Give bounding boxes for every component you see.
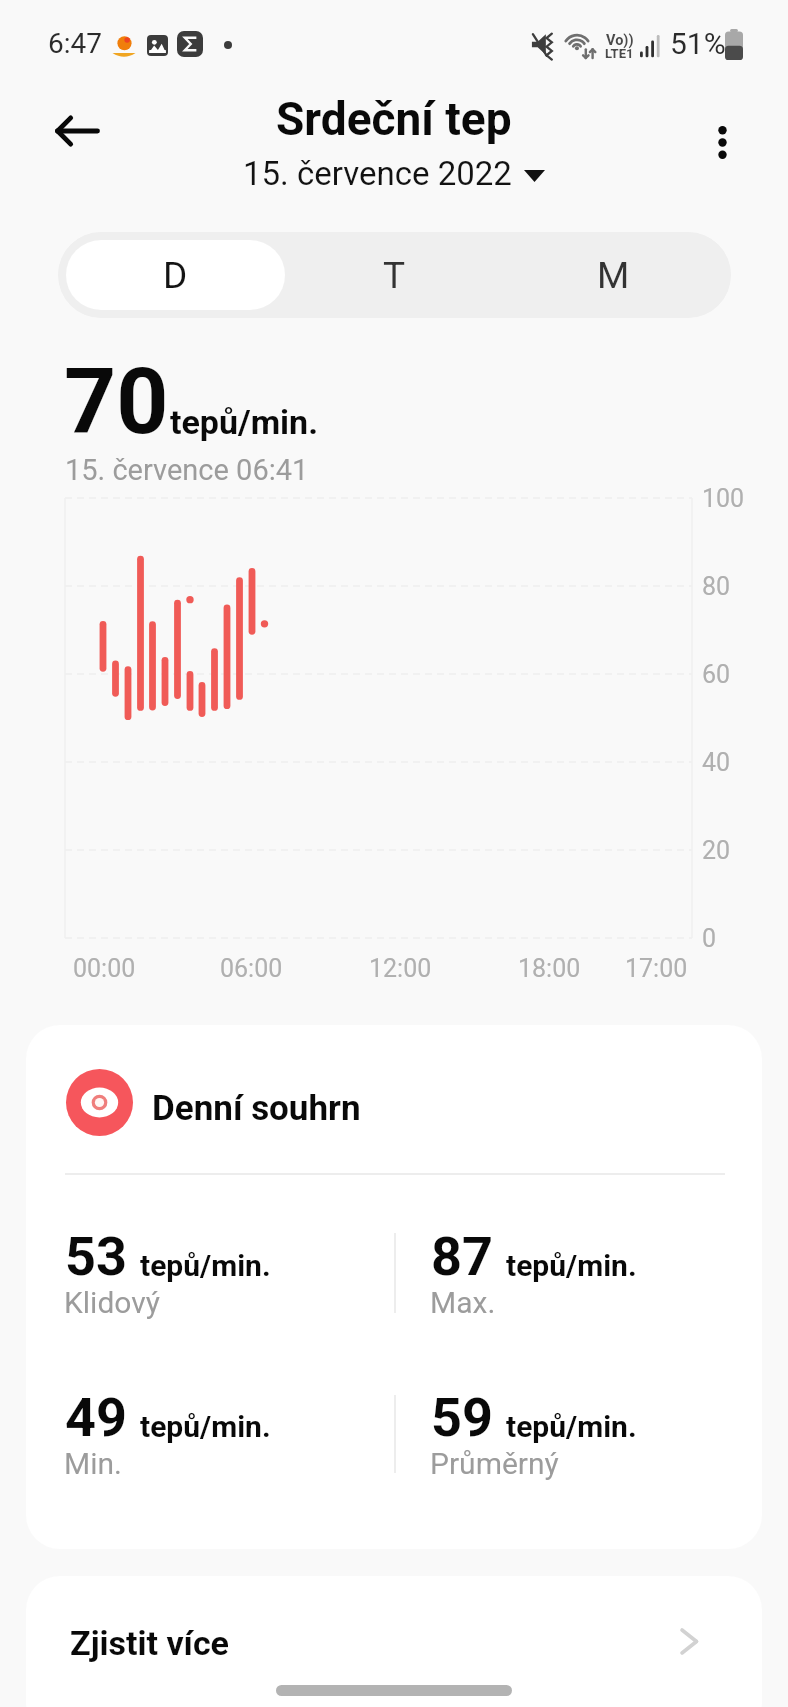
- staticText: Srdeční tep: [276, 92, 512, 146]
- staticText: Zjistit více: [70, 1623, 229, 1663]
- staticText: 51%: [670, 26, 726, 61]
- staticText: 06:00: [220, 954, 283, 983]
- button[interactable]: T: [285, 240, 504, 310]
- staticText: 100: [702, 484, 745, 513]
- staticText: Klidový: [64, 1285, 160, 1320]
- staticText: tepů/min.: [506, 1248, 637, 1283]
- button[interactable]: Back: [28, 83, 124, 179]
- staticText: 40: [702, 748, 731, 777]
- staticText: 87: [431, 1225, 493, 1288]
- button[interactable]: More options: [674, 94, 770, 190]
- staticText: LTE1: [605, 46, 634, 61]
- staticText: D: [163, 254, 188, 297]
- staticText: Max.: [430, 1285, 496, 1320]
- button[interactable]: 15. července 2022: [243, 154, 545, 193]
- staticText: Min.: [64, 1446, 122, 1481]
- staticText: tepů/min.: [140, 1409, 271, 1444]
- staticText: tepů/min.: [170, 402, 319, 442]
- staticText: 59: [431, 1386, 493, 1449]
- staticText: 49: [65, 1386, 127, 1449]
- staticText: 20: [702, 836, 731, 865]
- staticText: tepů/min.: [506, 1409, 637, 1444]
- staticText: 0: [702, 924, 717, 953]
- staticText: 15. července 2022: [243, 154, 512, 193]
- staticText: 60: [702, 660, 731, 689]
- staticText: 6:47: [48, 27, 102, 60]
- button[interactable]: M: [504, 240, 723, 310]
- staticText: Vo)): [606, 32, 634, 49]
- staticText: 80: [702, 572, 731, 601]
- button[interactable]: D: [66, 240, 285, 310]
- staticText: Průměrný: [430, 1446, 559, 1481]
- staticText: 70: [64, 349, 169, 456]
- staticText: T: [383, 254, 406, 297]
- staticText: 53: [65, 1225, 127, 1288]
- staticText: M: [597, 254, 630, 297]
- button[interactable]: Zjistit více: [26, 1576, 762, 1707]
- staticText: tepů/min.: [140, 1248, 271, 1283]
- staticText: 18:00: [518, 954, 581, 983]
- staticText: 15. července 06:41: [65, 453, 309, 487]
- staticText: 17:00: [625, 954, 688, 983]
- staticText: 00:00: [73, 954, 136, 983]
- staticText: Denní souhrn: [152, 1088, 361, 1129]
- staticText: 12:00: [369, 954, 432, 983]
